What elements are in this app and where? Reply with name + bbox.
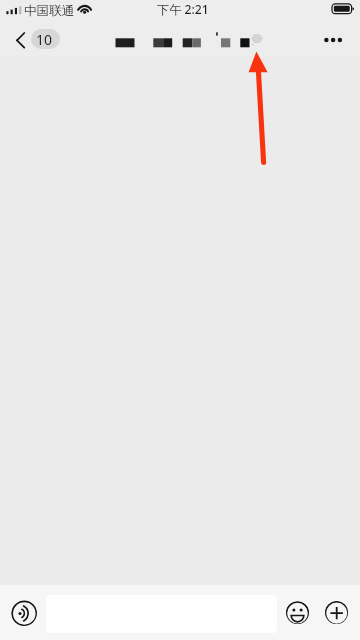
staticText: 下午 2:21	[157, 1, 209, 18]
button[interactable]: Chat title	[112, 28, 266, 52]
button[interactable]: Back	[8, 26, 34, 54]
button[interactable]: More options	[318, 26, 352, 54]
button[interactable]: Emoji	[286, 601, 309, 624]
staticText: 中国联通	[24, 3, 75, 19]
button[interactable]: 10	[31, 29, 60, 49]
staticText: 10	[36, 30, 53, 49]
button[interactable]: Voice input	[11, 600, 37, 626]
button[interactable]: More functions	[325, 601, 348, 624]
